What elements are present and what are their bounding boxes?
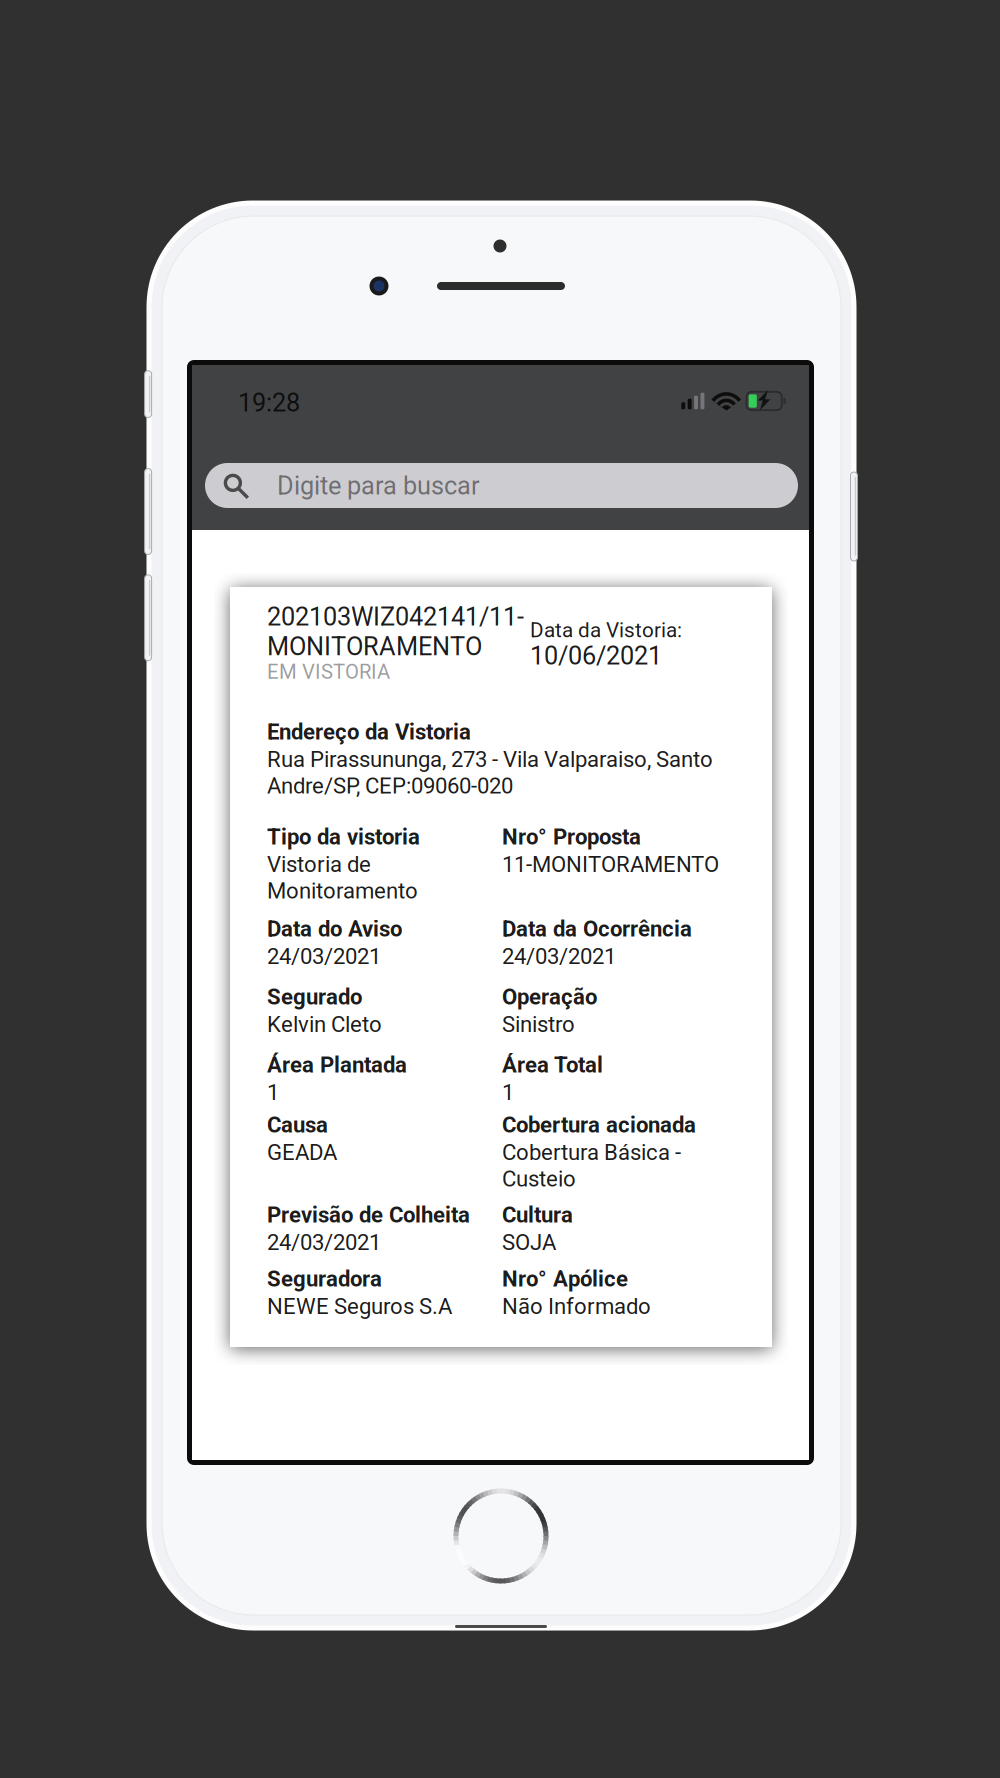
staticText: 10/06/2021 (530, 641, 662, 671)
staticText: Causa (267, 1112, 328, 1138)
staticText: Não Informado (502, 1293, 651, 1319)
staticText: 1 (267, 1079, 279, 1105)
staticText: Sinistro (502, 1011, 575, 1037)
staticText: Vistoria de (267, 851, 371, 877)
staticText: 1 (502, 1079, 514, 1105)
staticText: 19:28 (238, 388, 300, 418)
staticText: 202103WIZ042141/11- (267, 602, 524, 632)
staticText: Andre/SP, CEP:09060-020 (267, 773, 513, 799)
staticText: NEWE Seguros S.A (267, 1293, 452, 1319)
staticText: Nro° Proposta (502, 824, 641, 850)
staticText: 24/03/2021 (267, 943, 381, 969)
staticText: Seguradora (267, 1266, 382, 1292)
staticText: Kelvin Cleto (267, 1011, 382, 1037)
staticText: Nro° Apólice (502, 1266, 628, 1292)
button[interactable]: Digite para buscar (205, 463, 798, 508)
staticText: Cobertura acionada (502, 1112, 696, 1138)
staticText: Segurado (267, 984, 362, 1010)
staticText: Endereço da Vistoria (267, 719, 471, 745)
staticText: Data do Aviso (267, 916, 402, 942)
staticText: Área Total (502, 1052, 603, 1078)
staticText: Monitoramento (267, 878, 418, 904)
staticText: Data da Vistoria: (530, 618, 682, 642)
staticText: Operação (502, 984, 597, 1010)
staticText: Rua Pirassununga, 273 - Vila Valparaiso,… (267, 746, 713, 772)
staticText: Data da Ocorrência (502, 916, 692, 942)
staticText: Digite para buscar (277, 471, 480, 501)
staticText: Tipo da vistoria (267, 824, 420, 850)
staticText: Previsão de Colheita (267, 1202, 470, 1228)
staticText: 11-MONITORAMENTO (502, 851, 719, 877)
staticText: Cobertura Básica - (502, 1139, 681, 1165)
staticText: 24/03/2021 (267, 1229, 381, 1255)
staticText: 24/03/2021 (502, 943, 616, 969)
staticText: SOJA (502, 1229, 556, 1255)
staticText: Cultura (502, 1202, 573, 1228)
staticText: MONITORAMENTO (267, 632, 482, 661)
staticText: Área Plantada (267, 1052, 407, 1078)
staticText: Custeio (502, 1166, 576, 1192)
staticText: GEADA (267, 1139, 337, 1165)
staticText: EM VISTORIA (267, 660, 390, 684)
